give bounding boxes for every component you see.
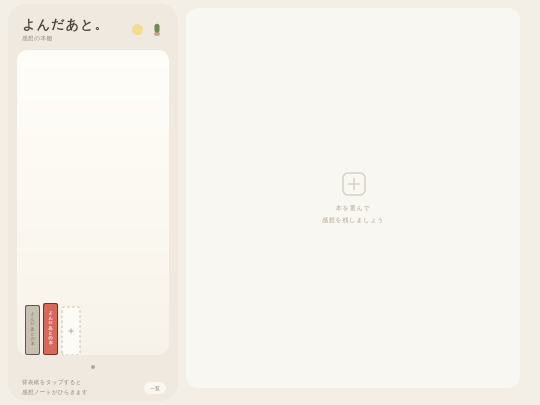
staticText: あ	[48, 325, 53, 330]
staticText: 本を選んで	[336, 204, 371, 212]
staticText: 本	[31, 341, 35, 346]
button[interactable]: List view	[144, 382, 166, 394]
button[interactable]: よ	[17, 50, 169, 355]
button[interactable]: よ	[44, 304, 57, 354]
staticText: の	[48, 335, 53, 340]
staticText: 感想を残しましょう	[322, 216, 385, 224]
staticText: よんだあと。	[22, 16, 109, 32]
staticText: よ	[48, 310, 53, 315]
staticText: ん	[30, 316, 35, 321]
staticText: と	[30, 331, 35, 336]
staticText: 感想ノートがひらきます	[22, 389, 88, 396]
button[interactable]: よ	[26, 306, 39, 354]
staticText: の	[30, 336, 35, 341]
staticText: 背表紙をタップすると	[22, 379, 82, 386]
staticText: 感想の本棚	[22, 35, 53, 42]
button[interactable]: Add book	[62, 307, 80, 355]
staticText: よ	[30, 311, 35, 316]
staticText: あ	[30, 326, 35, 331]
staticText: 本	[49, 340, 53, 345]
staticText: 一覧	[150, 385, 160, 391]
button[interactable]: Plant	[148, 20, 166, 38]
button[interactable]: Theme	[128, 20, 146, 38]
staticText: と	[48, 330, 53, 335]
staticText: だ	[30, 321, 35, 326]
staticText: だ	[48, 320, 53, 325]
staticText: ん	[48, 315, 53, 320]
